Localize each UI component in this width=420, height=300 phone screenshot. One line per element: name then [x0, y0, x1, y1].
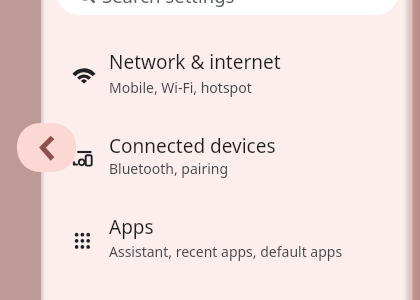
staticText: Network & internet — [109, 49, 281, 75]
staticText: Apps — [109, 214, 154, 240]
button[interactable] — [17, 123, 76, 172]
staticText: Connected devices — [109, 133, 276, 159]
button[interactable]: Search settings — [56, 0, 399, 15]
staticText: Search settings — [102, 0, 235, 8]
staticText: Mobile, Wi-Fi, hotspot — [109, 78, 252, 97]
staticText: Assistant, recent apps, default apps — [109, 242, 343, 261]
staticText: Bluetooth, pairing — [109, 159, 229, 178]
